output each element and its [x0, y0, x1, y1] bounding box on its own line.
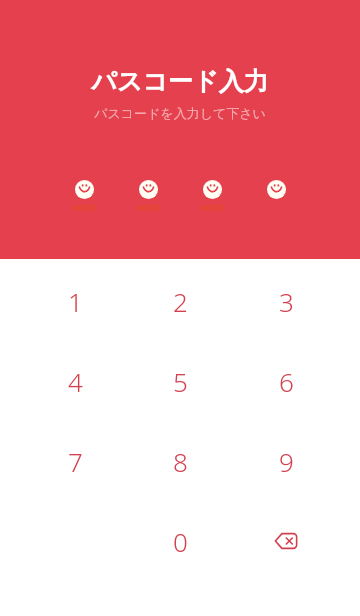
staticText: 8: [173, 444, 188, 479]
button[interactable]: 5: [127, 341, 233, 421]
staticText: 5: [173, 364, 188, 399]
button[interactable]: 2: [127, 261, 233, 341]
staticText: 0: [173, 524, 188, 559]
staticText: 7: [68, 444, 83, 479]
staticText: 9: [279, 444, 294, 479]
button[interactable]: 4: [22, 341, 128, 421]
button[interactable]: 7: [22, 421, 128, 501]
staticText: 6: [279, 364, 294, 399]
staticText: パスコードを入力して下さい: [94, 105, 266, 121]
button[interactable]: 0: [127, 501, 233, 581]
button[interactable]: 8: [127, 421, 233, 501]
button[interactable]: Backspace: [233, 501, 339, 581]
button[interactable]: 9: [233, 421, 339, 501]
button[interactable]: 3: [233, 261, 339, 341]
staticText: 4: [68, 364, 83, 399]
staticText: パスコード入力: [91, 66, 269, 97]
button[interactable]: 6: [233, 341, 339, 421]
button[interactable]: 1: [22, 261, 128, 341]
staticText: PASS!: [137, 201, 160, 213]
staticText: PASS!: [201, 201, 224, 213]
staticText: 1: [68, 284, 83, 319]
staticText: 2: [173, 284, 188, 319]
staticText: 3: [279, 284, 294, 319]
staticText: PASS!: [73, 201, 96, 213]
